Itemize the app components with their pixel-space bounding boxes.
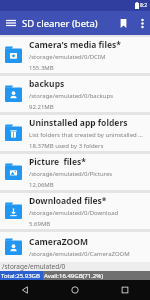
button[interactable]: Uninstalled app folders xyxy=(0,115,150,151)
button[interactable]: Home xyxy=(62,280,88,300)
staticText: Downloaded files* xyxy=(29,195,107,207)
staticText: /storage/emulated/0 xyxy=(2,262,66,271)
staticText: 8:2 xyxy=(140,2,148,9)
button[interactable]: Camera's media files* xyxy=(0,37,150,73)
staticText: /storage/emulated/0/CameraZOOM xyxy=(29,250,130,258)
staticText: Picture files* xyxy=(29,156,86,168)
button[interactable]: Picture files* xyxy=(0,154,150,190)
staticText: /storage/emulated/0/DCIM xyxy=(29,53,106,61)
staticText: backups xyxy=(29,78,65,90)
staticText: /storage/emulated/0/backups xyxy=(29,92,114,100)
button[interactable]: Bookmarks xyxy=(112,12,134,34)
button[interactable]: CameraZOOM xyxy=(0,232,150,262)
staticText: Avail:16.49GB(71.2%) xyxy=(44,272,104,280)
staticText: CameraZOOM xyxy=(29,236,88,248)
staticText: List folders that created by uninstalled… xyxy=(29,131,146,139)
staticText: 5.69MB xyxy=(29,220,51,228)
button[interactable]: Downloaded files* xyxy=(0,193,150,229)
staticText: Total:25.93GB xyxy=(1,272,40,280)
staticText: /storage/emulated/0/Pictures xyxy=(29,170,113,178)
staticText: 18.37MB used by 3 folders xyxy=(29,142,104,150)
staticText: 155.3MB xyxy=(29,64,54,72)
button[interactable]: Recent apps xyxy=(112,280,138,300)
staticText: /storage/emulated/0/Download xyxy=(29,209,119,217)
button[interactable]: backups xyxy=(0,76,150,112)
staticText: 92.21MB xyxy=(29,103,54,111)
staticText: Camera's media files* xyxy=(29,39,121,51)
button[interactable]: Back xyxy=(12,280,38,300)
staticText: SD cleaner (beta) xyxy=(22,17,112,30)
staticText: 12.06MB xyxy=(29,181,54,189)
button[interactable]: Open navigation menu xyxy=(0,12,22,34)
button[interactable]: More options xyxy=(134,15,150,31)
staticText: Uninstalled app folders xyxy=(29,117,128,129)
